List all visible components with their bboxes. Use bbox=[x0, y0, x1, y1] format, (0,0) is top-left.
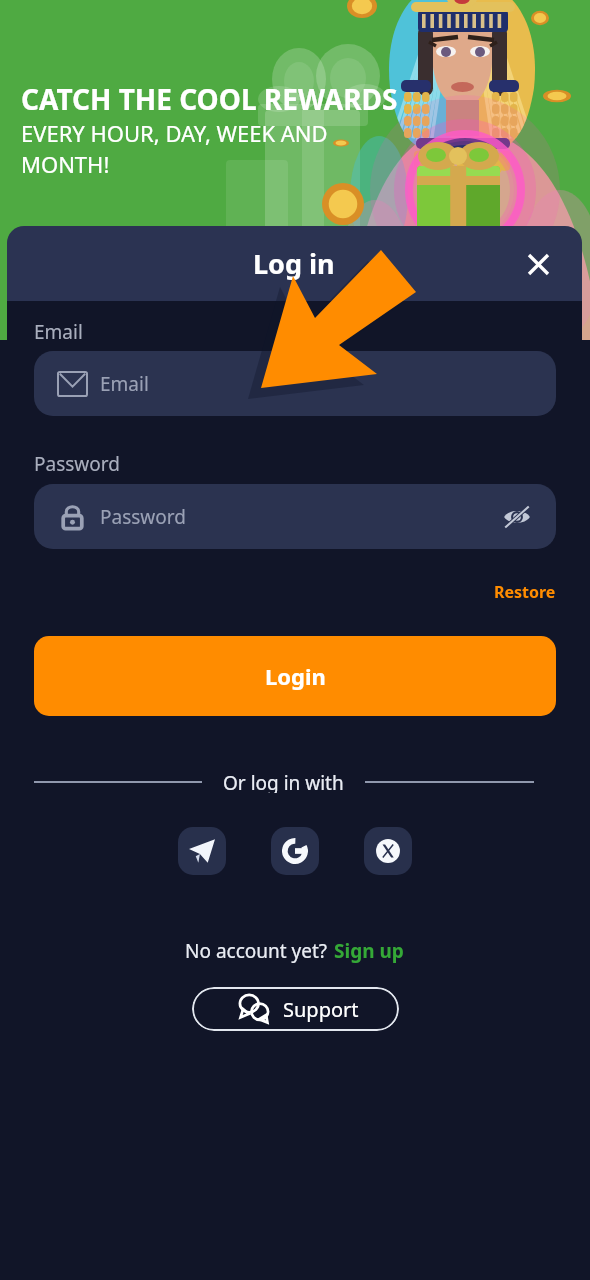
staticText: Password bbox=[100, 504, 186, 530]
button[interactable]: Close bbox=[518, 244, 558, 284]
button[interactable]: Support bbox=[192, 987, 399, 1031]
staticText: Or log in with bbox=[223, 770, 344, 793]
staticText: Email bbox=[34, 319, 83, 345]
staticText: Password bbox=[34, 451, 120, 477]
button[interactable]: Login bbox=[34, 636, 556, 716]
button[interactable]: Google bbox=[271, 827, 319, 875]
staticText: Restore bbox=[494, 581, 556, 603]
staticText: Email bbox=[100, 371, 149, 397]
button[interactable]: Show password bbox=[500, 500, 534, 534]
button[interactable]: Sign up bbox=[333, 938, 405, 964]
staticText: Support bbox=[283, 996, 359, 1023]
button[interactable]: Restore bbox=[490, 577, 560, 607]
staticText: Log in bbox=[253, 245, 335, 282]
button[interactable]: Telegram bbox=[178, 827, 226, 875]
staticText: Login bbox=[265, 661, 326, 691]
button[interactable]: Email bbox=[34, 351, 556, 416]
button[interactable]: Password bbox=[34, 484, 556, 549]
staticText: No account yet? bbox=[185, 938, 333, 964]
staticText: CATCH THE COOL REWARDS bbox=[21, 80, 398, 118]
button[interactable]: X bbox=[364, 827, 412, 875]
staticText: Sign up bbox=[334, 938, 404, 964]
staticText: EVERY HOUR, DAY, WEEK AND MONTH! bbox=[21, 118, 328, 180]
